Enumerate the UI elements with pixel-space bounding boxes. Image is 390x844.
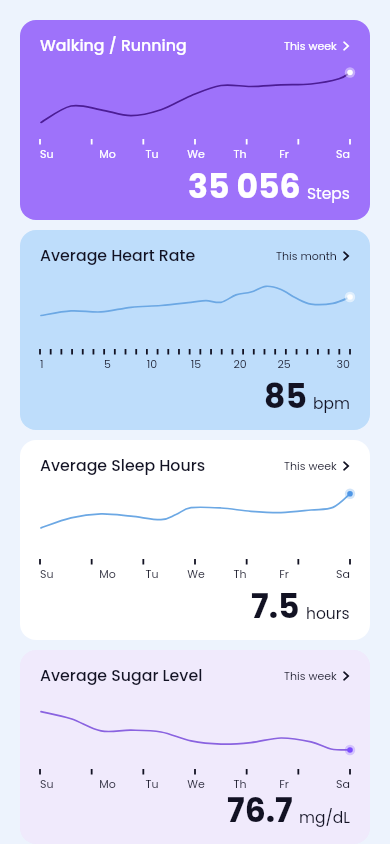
button[interactable]: Average Sleep Hours xyxy=(20,440,370,640)
staticText: We xyxy=(174,566,218,581)
staticText: Fr xyxy=(262,776,306,791)
staticText: Tu xyxy=(130,776,174,791)
button[interactable]: Average Sugar Level xyxy=(20,650,370,844)
staticText: This week xyxy=(284,38,337,53)
staticText: Average Sugar Level xyxy=(40,664,203,686)
button[interactable]: This month xyxy=(276,248,351,263)
button[interactable]: This week xyxy=(284,458,351,473)
staticText: We xyxy=(174,776,218,791)
staticText: Sa xyxy=(306,146,350,161)
staticText: 15 xyxy=(174,356,218,371)
staticText: This week xyxy=(284,458,337,473)
button[interactable]: This week xyxy=(284,668,351,683)
staticText: Sa xyxy=(306,776,350,791)
staticText: 85 xyxy=(264,373,307,419)
staticText: 30 xyxy=(306,356,350,371)
staticText: Tu xyxy=(130,146,174,161)
staticText: Fr xyxy=(262,146,306,161)
staticText: Su xyxy=(40,146,85,161)
staticText: 5 xyxy=(85,356,130,371)
staticText: Th xyxy=(218,146,262,161)
staticText: Sa xyxy=(306,566,350,581)
staticText: Tu xyxy=(130,566,174,581)
staticText: 76.7 xyxy=(227,787,293,833)
staticText: This week xyxy=(284,668,337,683)
staticText: 25 xyxy=(262,356,306,371)
staticText: Mo xyxy=(85,776,130,791)
staticText: 10 xyxy=(130,356,174,371)
staticText: Walking / Running xyxy=(40,34,187,56)
staticText: 1 xyxy=(40,356,85,371)
staticText: Fr xyxy=(262,566,306,581)
staticText: Th xyxy=(218,566,262,581)
staticText: 20 xyxy=(218,356,262,371)
staticText: Steps xyxy=(307,183,350,205)
staticText: mg/dL xyxy=(299,807,350,829)
staticText: Su xyxy=(40,566,85,581)
staticText: hours xyxy=(306,603,350,625)
staticText: 7.5 xyxy=(251,583,300,629)
staticText: Average Sleep Hours xyxy=(40,454,206,476)
button[interactable]: This week xyxy=(284,38,351,53)
staticText: We xyxy=(174,146,218,161)
button[interactable]: Walking / Running xyxy=(20,20,370,220)
staticText: Mo xyxy=(85,146,130,161)
staticText: 35 056 xyxy=(188,163,301,209)
staticText: Average Heart Rate xyxy=(40,244,196,266)
staticText: Su xyxy=(40,776,85,791)
staticText: Mo xyxy=(85,566,130,581)
staticText: This month xyxy=(276,248,337,263)
staticText: bpm xyxy=(313,393,350,415)
button[interactable]: Average Heart Rate xyxy=(20,230,370,430)
staticText: Th xyxy=(218,776,262,791)
